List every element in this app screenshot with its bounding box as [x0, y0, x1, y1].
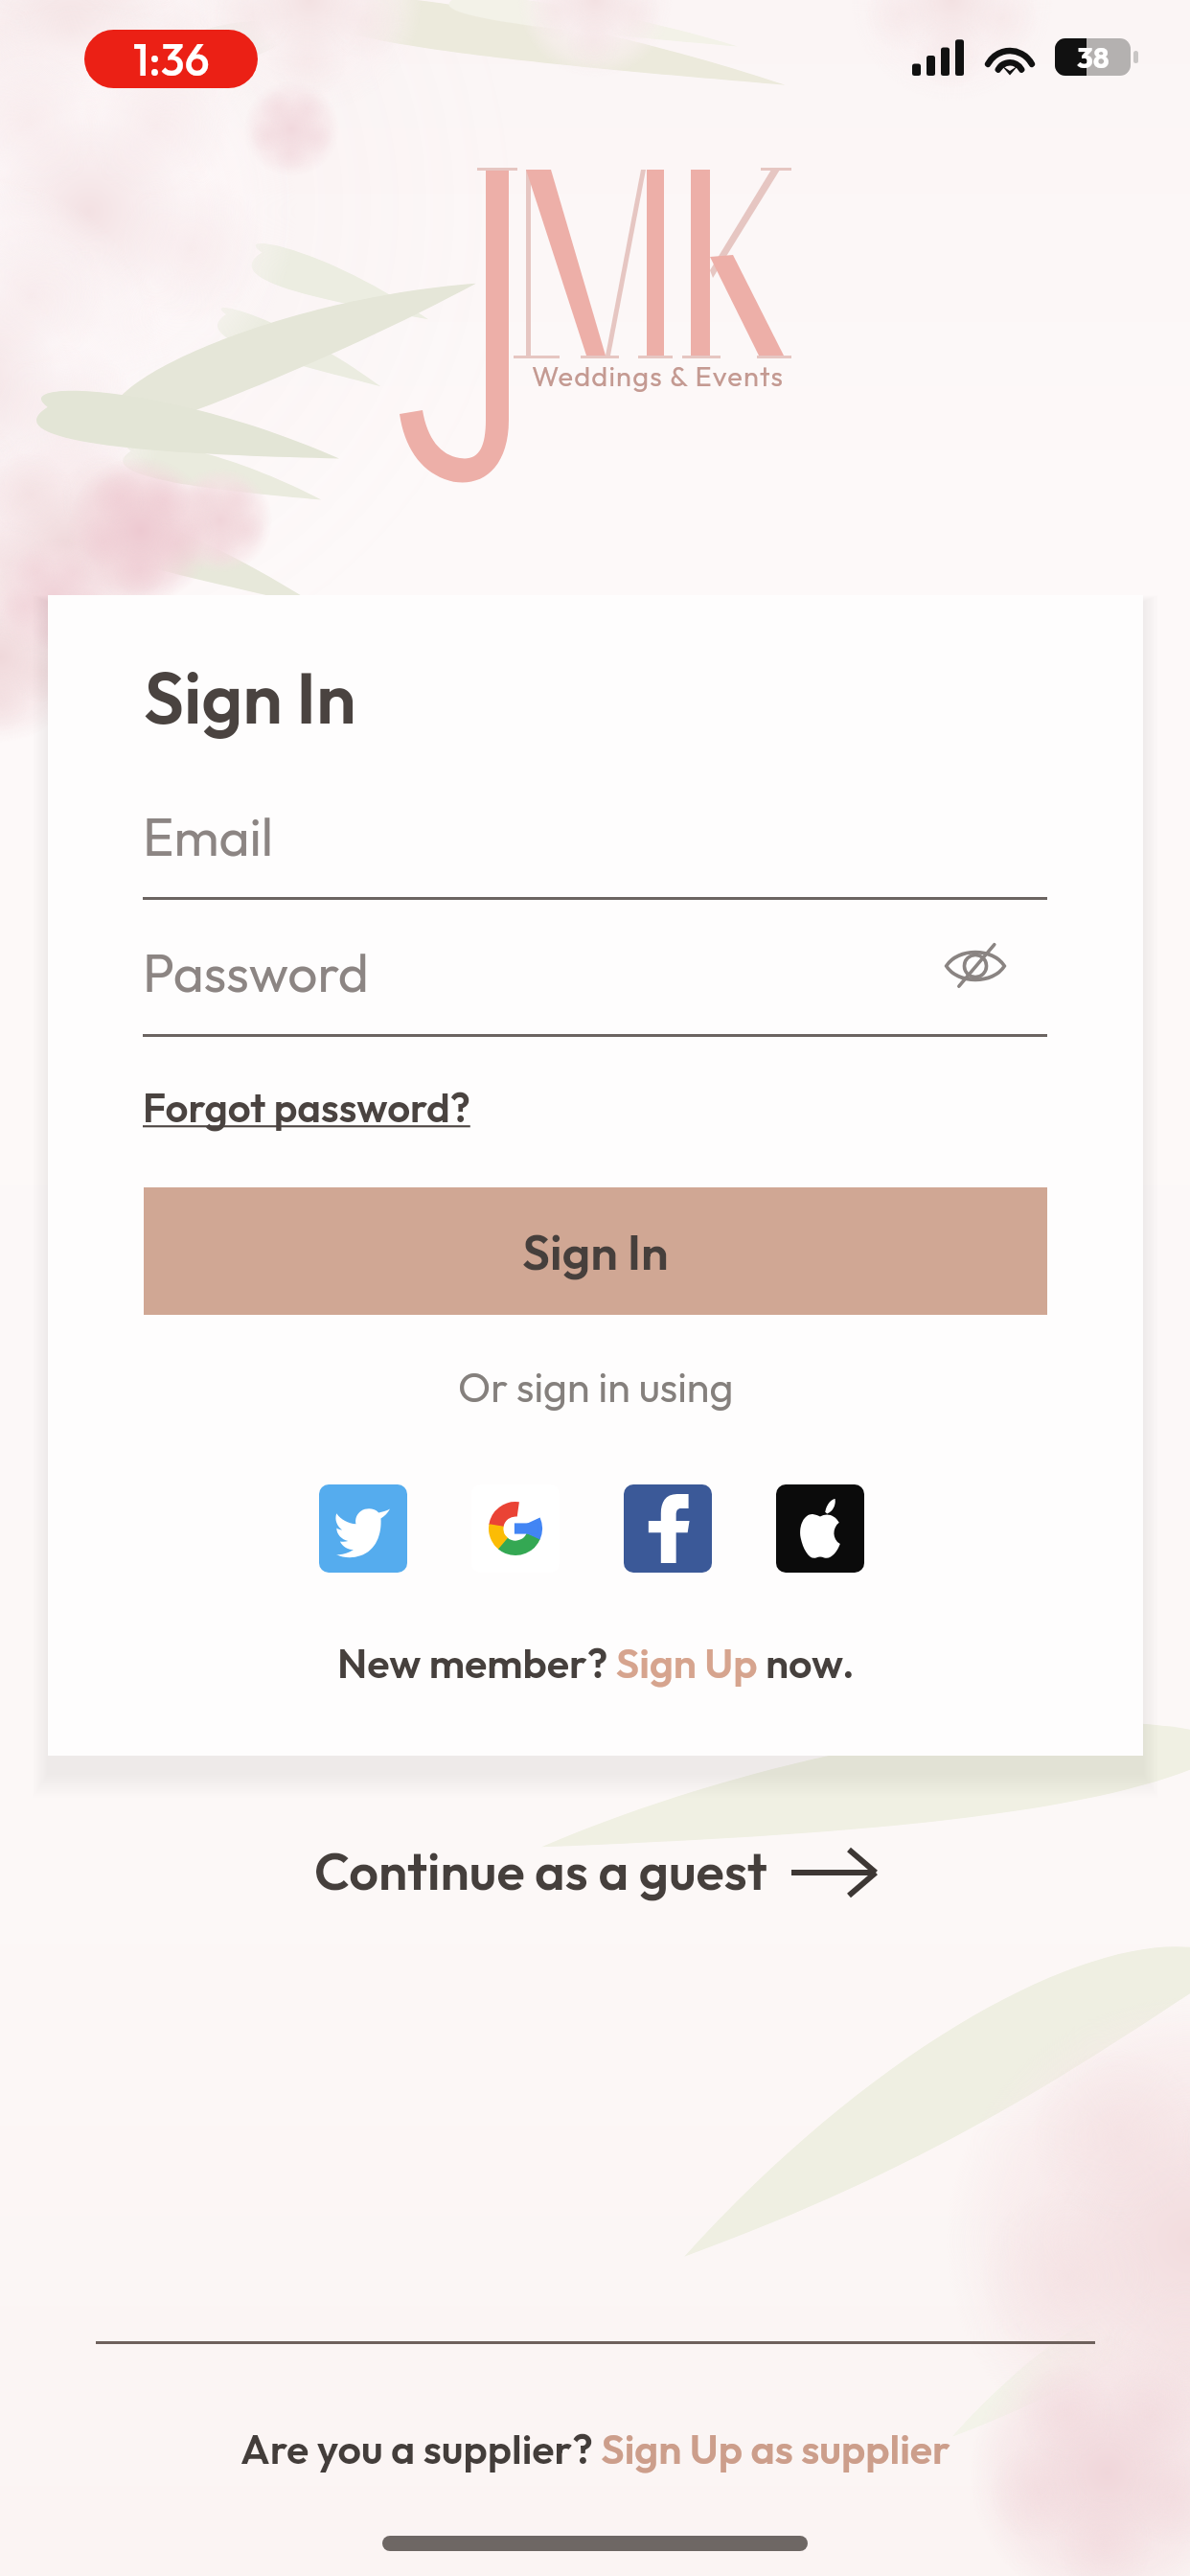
staticText: Email — [143, 803, 274, 869]
button[interactable]: Sign In — [144, 1187, 1047, 1315]
button[interactable]: Sign in with Google — [471, 1484, 560, 1573]
button[interactable]: Sign in with Facebook — [624, 1484, 712, 1573]
staticText: Password — [143, 939, 369, 1005]
staticText: Continue as a guest — [314, 1838, 767, 1903]
staticText: Or sign in using — [458, 1361, 734, 1413]
staticText: Sign In — [144, 653, 356, 742]
staticText: 1:36 — [133, 32, 210, 87]
staticText: Weddings & Events — [532, 358, 785, 394]
button[interactable]: New member? Sign Up now. — [337, 1637, 855, 1689]
button[interactable]: Are you a supplier? Sign Up as supplier — [240, 2423, 950, 2474]
button[interactable]: Continue as a guest — [314, 1838, 876, 1903]
button[interactable]: Sign in with Twitter — [319, 1484, 407, 1573]
staticText: Sign In — [522, 1221, 669, 1282]
button[interactable]: Forgot password? — [143, 1082, 470, 1133]
button[interactable]: Sign in with Apple — [776, 1484, 864, 1573]
staticText: 38 — [1077, 39, 1110, 76]
button[interactable]: Show password — [937, 928, 1014, 1004]
